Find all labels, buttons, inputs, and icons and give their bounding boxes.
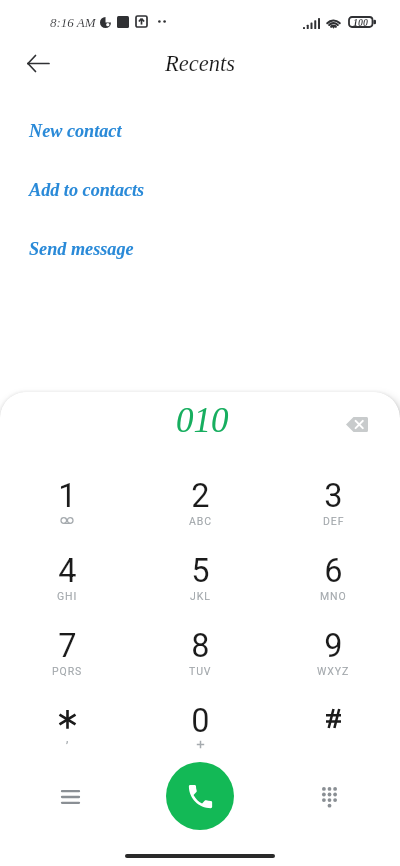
button[interactable]: Backspace <box>337 404 377 444</box>
staticText: 6 <box>324 552 343 590</box>
staticText: 2 <box>191 477 210 515</box>
staticText: TUV <box>189 665 212 677</box>
button[interactable]: 9 <box>267 616 400 691</box>
staticText: ABC <box>189 515 212 527</box>
button[interactable]: New contact <box>0 111 400 151</box>
staticText: 0 <box>191 702 210 740</box>
staticText: MNO <box>320 590 347 602</box>
staticText: JKL <box>190 590 211 602</box>
staticText: 100 <box>353 17 368 28</box>
button[interactable]: 5 <box>134 541 267 616</box>
staticText: 9 <box>324 627 343 665</box>
button[interactable]: Call <box>166 762 234 830</box>
staticText: GHI <box>57 590 78 602</box>
staticText: 8 <box>191 627 210 665</box>
button[interactable]: , <box>0 691 134 766</box>
button[interactable]: 8 <box>134 616 267 691</box>
staticText: Send message <box>29 239 134 259</box>
staticText: 3 <box>324 477 343 515</box>
staticText: Recents <box>165 51 235 76</box>
button[interactable]: Dialpad <box>307 774 352 819</box>
staticText: 010 <box>176 401 229 440</box>
button[interactable]: 0 <box>134 691 267 766</box>
staticText: 4 <box>58 552 77 590</box>
button[interactable]: Add to contacts <box>0 170 400 210</box>
staticText: WXYZ <box>317 665 350 677</box>
button[interactable]: 6 <box>267 541 400 616</box>
staticText: DEF <box>323 515 345 527</box>
staticText: Add to contacts <box>29 180 145 200</box>
staticText: 7 <box>58 627 77 665</box>
button[interactable]: 2 <box>134 466 267 541</box>
button[interactable] <box>267 691 400 766</box>
button[interactable]: Back <box>15 42 61 84</box>
staticText: PQRS <box>52 665 83 677</box>
button[interactable]: 3 <box>267 466 400 541</box>
staticText: 1 <box>58 477 77 515</box>
button[interactable]: Send message <box>0 229 400 269</box>
button[interactable]: 7 <box>0 616 134 691</box>
button[interactable]: 1 <box>0 466 134 541</box>
staticText: 5 <box>191 552 210 590</box>
button[interactable]: Call history <box>48 774 93 819</box>
staticText: , <box>66 731 69 745</box>
button[interactable]: 4 <box>0 541 134 616</box>
staticText: New contact <box>29 121 122 141</box>
staticText: 8:16 AM <box>50 15 96 29</box>
